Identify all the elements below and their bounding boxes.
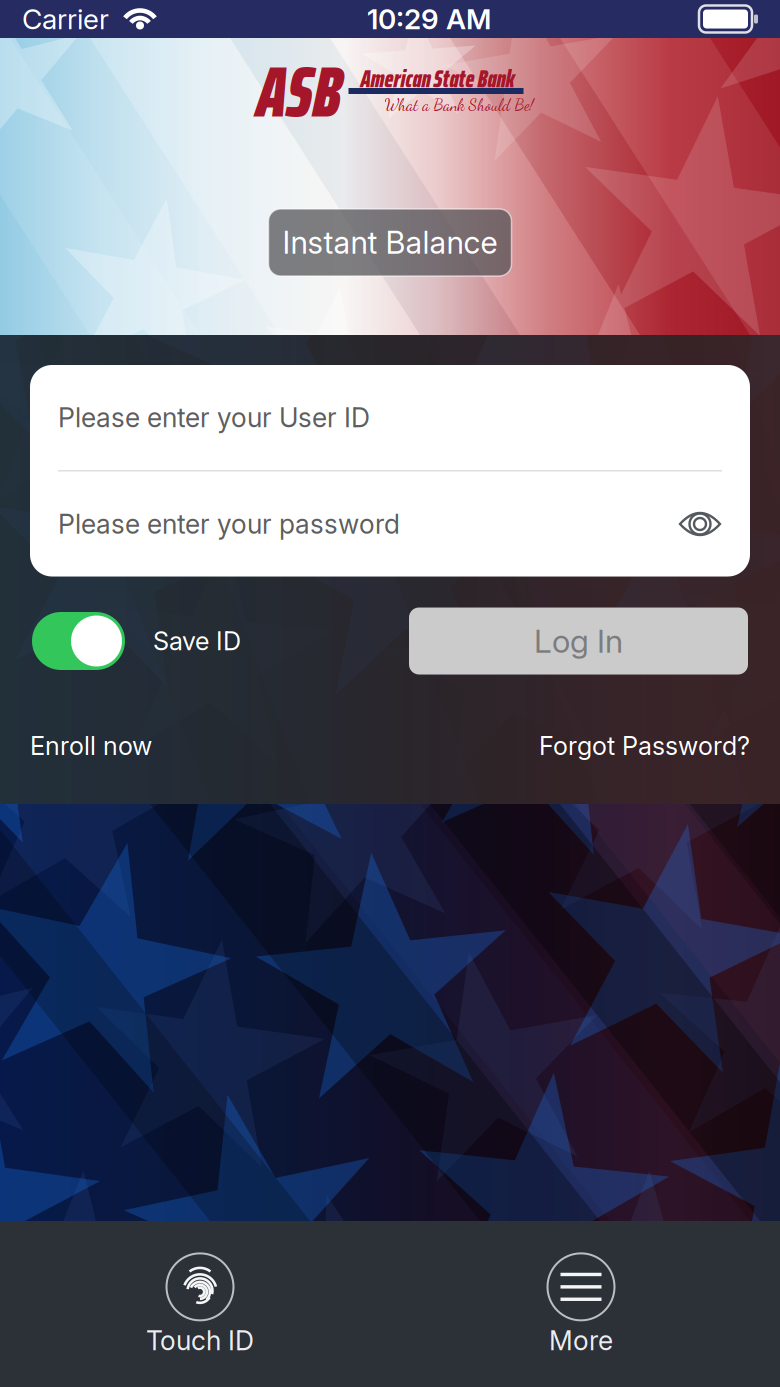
staticText: Carrier [22, 2, 109, 36]
staticText: Save ID [153, 626, 241, 656]
staticText: What a Bank Should Be! [384, 95, 533, 115]
button[interactable]: Touch ID [116, 1247, 284, 1363]
staticText: Please enter your User ID [58, 401, 370, 434]
button[interactable]: Show password [678, 508, 722, 540]
button[interactable]: Instant Balance [268, 209, 511, 276]
staticText: American State Bank [360, 60, 514, 98]
button[interactable]: Forgot Password? [539, 730, 750, 761]
button[interactable]: More [517, 1247, 644, 1363]
staticText: Enroll now [30, 730, 152, 761]
button[interactable]: Log In [409, 607, 748, 674]
staticText: Touch ID [146, 1324, 254, 1357]
staticText: Please enter your password [58, 508, 400, 540]
staticText: Forgot Password? [539, 730, 750, 761]
staticText: More [549, 1324, 613, 1357]
staticText: Log In [534, 622, 623, 660]
staticText: ASB [256, 36, 341, 148]
button[interactable]: Enroll now [30, 730, 152, 761]
button[interactable]: Save ID [32, 612, 241, 670]
staticText: Instant Balance [282, 224, 497, 261]
staticText: 10:29 AM [367, 2, 491, 36]
